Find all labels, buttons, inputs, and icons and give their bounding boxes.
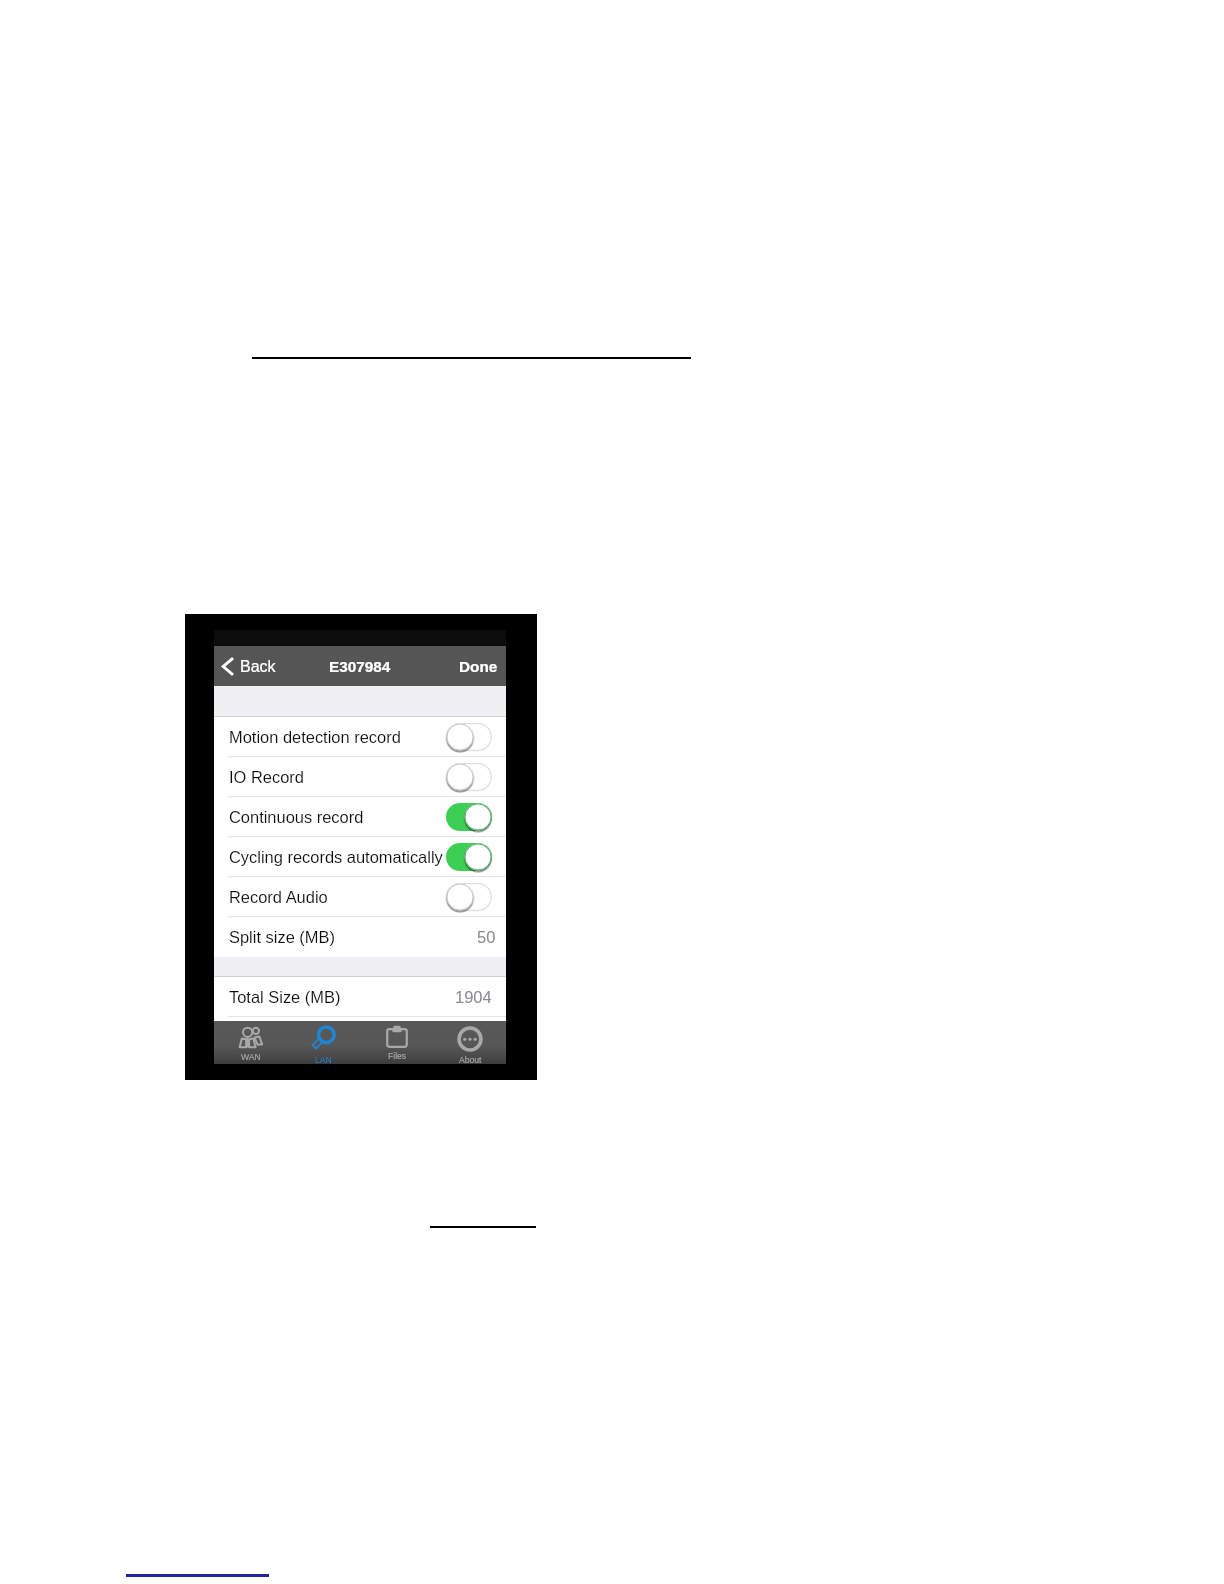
staticText: IO Record	[229, 768, 304, 786]
staticText: Back	[240, 658, 276, 676]
staticText: About	[459, 1055, 482, 1065]
button[interactable]: Switch off	[446, 763, 492, 791]
button[interactable]: IO Record	[214, 757, 506, 797]
button[interactable]: Cycling records automatically	[214, 837, 506, 877]
button[interactable]: About	[433, 1021, 506, 1064]
button[interactable]: Done	[459, 658, 498, 675]
staticText: 1904	[455, 988, 492, 1006]
staticText: WAN	[241, 1052, 261, 1062]
staticText: Motion detection record	[229, 728, 401, 746]
button[interactable]: Switch on	[446, 843, 492, 871]
button[interactable]: Switch on	[446, 803, 492, 831]
staticText: Done	[459, 658, 498, 675]
button[interactable]: Back	[222, 657, 276, 676]
button[interactable]: LAN	[287, 1021, 360, 1064]
button[interactable]: Record Audio	[214, 877, 506, 917]
button[interactable]: Switch off	[446, 723, 492, 751]
staticText: Cycling records automatically	[229, 848, 443, 866]
button[interactable]: Switch off	[446, 883, 492, 911]
staticText: 50	[477, 928, 496, 946]
staticText: Record Audio	[229, 888, 328, 906]
button[interactable]: Files	[360, 1021, 433, 1064]
staticText: E307984	[329, 658, 391, 675]
staticText: Continuous record	[229, 808, 364, 826]
button[interactable]: Split size (MB)	[214, 917, 506, 957]
staticText: Total Size (MB)	[229, 988, 341, 1006]
staticText: Files	[388, 1051, 407, 1061]
button[interactable]: Motion detection record	[214, 717, 506, 757]
staticText: LAN	[315, 1055, 332, 1065]
button[interactable]: Continuous record	[214, 797, 506, 837]
button[interactable]: Total Size (MB)	[214, 977, 506, 1017]
button[interactable]: WAN	[214, 1021, 287, 1064]
staticText: Split size (MB)	[229, 928, 335, 946]
